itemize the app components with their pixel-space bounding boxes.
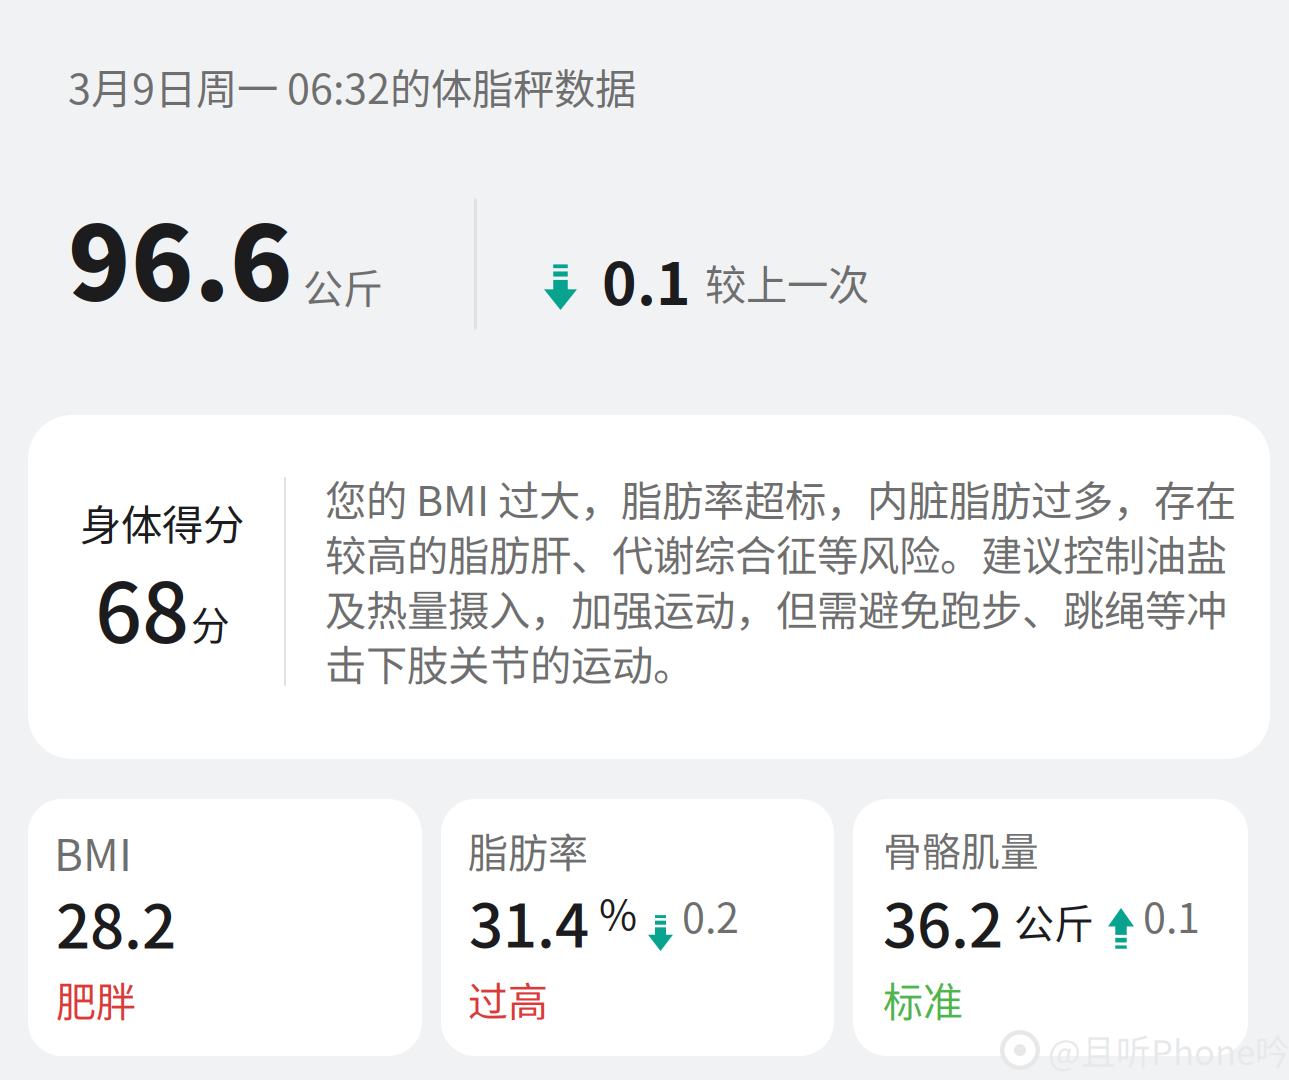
staticText: 骨骼肌量 <box>883 821 1039 877</box>
staticText: 脂肪率 <box>468 821 588 879</box>
staticText: 过高 <box>468 970 548 1028</box>
staticText: 标准 <box>883 970 963 1028</box>
staticText: 较上一次 <box>705 252 869 312</box>
staticText: 身体得分 <box>80 492 244 552</box>
staticText: 28.2 <box>56 879 176 966</box>
staticText: 3月9日周一 06:32的体脂秤数据 <box>68 56 636 116</box>
button[interactable]: 身体得分 68 分 <box>28 415 1270 759</box>
staticText: 肥胖 <box>56 970 136 1028</box>
button[interactable]: 骨骼肌量 36.2 公斤 标准 <box>853 799 1248 1056</box>
staticText: @且听Phone吟 <box>1048 1025 1289 1075</box>
staticText: 0.1 <box>602 237 691 322</box>
staticText: 36.2 <box>883 878 1003 965</box>
staticText: 0.1 <box>1143 885 1200 945</box>
button[interactable]: BMI 28.2 肥胖 <box>28 799 422 1056</box>
staticText: % <box>599 882 637 942</box>
staticText: 公斤 <box>303 257 383 315</box>
staticText: 公斤 <box>1014 892 1094 950</box>
staticText: 31.4 <box>469 878 589 965</box>
staticText: 68 <box>95 547 189 667</box>
button[interactable]: 脂肪率 31.4% 过高 <box>441 799 834 1056</box>
staticText: 0.2 <box>682 885 739 945</box>
staticText: 您的 BMI 过大，脂肪率超标，内脏脂肪过多，存在较高的脂肪肝、代谢综合征等风险… <box>325 468 1236 692</box>
staticText: BMI <box>54 820 132 884</box>
staticText: 96.6 <box>68 182 293 331</box>
staticText: 分 <box>191 595 230 651</box>
